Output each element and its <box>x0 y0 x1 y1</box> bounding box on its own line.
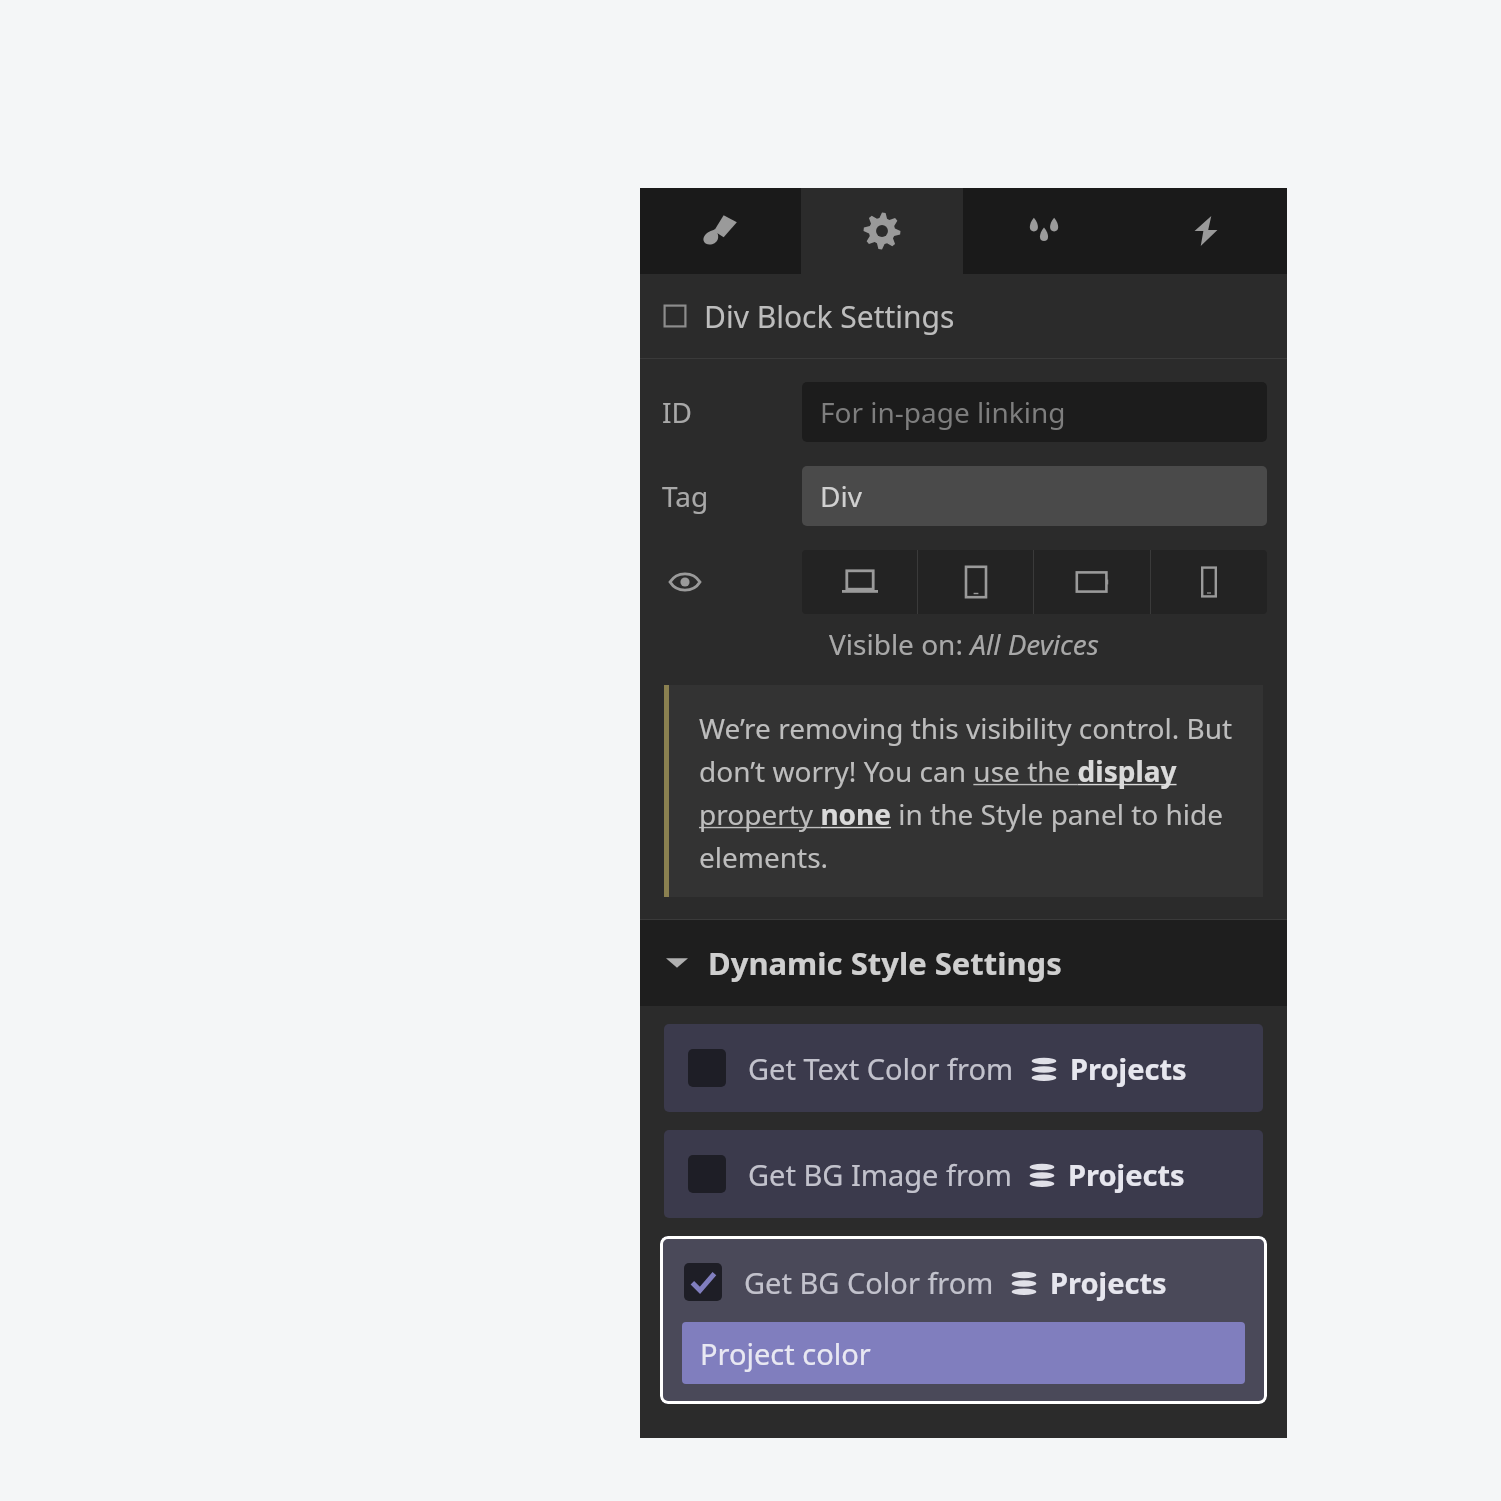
button[interactable]: Desktop <box>802 550 917 614</box>
staticText: Projects <box>1050 1263 1167 1302</box>
staticText: Project color <box>700 1334 871 1373</box>
staticText: For in-page linking <box>820 393 1066 431</box>
button[interactable]: Settings <box>801 188 963 274</box>
staticText: Projects <box>1070 1049 1187 1088</box>
staticText: Get BG Color from <box>744 1263 994 1302</box>
staticText: Visible on: All Devices <box>829 625 1099 663</box>
staticText: Dynamic Style Settings <box>708 942 1062 984</box>
button[interactable]: Project color <box>682 1322 1245 1384</box>
staticText: Tag <box>662 477 709 515</box>
button[interactable]: Get BG Color from <box>660 1236 1267 1404</box>
button[interactable]: Dynamic Style Settings <box>640 920 1287 1006</box>
staticText: We’re removing this visibility control. … <box>699 709 1243 876</box>
staticText: Projects <box>1068 1155 1185 1194</box>
button[interactable]: Div <box>802 466 1267 526</box>
staticText: Get BG Image from <box>748 1155 1012 1194</box>
button[interactable]: Get BG Image from <box>664 1130 1263 1218</box>
button[interactable]: Get Text Color from <box>664 1024 1263 1112</box>
button[interactable]: Style <box>640 188 801 274</box>
staticText: Div <box>820 477 862 515</box>
button[interactable]: Interactions <box>963 188 1125 274</box>
button[interactable]: Tablet <box>918 550 1033 614</box>
button[interactable]: Mobile portrait <box>1151 550 1267 614</box>
button[interactable]: Mobile landscape <box>1034 550 1150 614</box>
button[interactable]: Effects <box>1125 188 1287 274</box>
button[interactable]: For in-page linking <box>802 382 1267 442</box>
staticText: Get Text Color from <box>748 1049 1014 1088</box>
staticText: Div Block Settings <box>704 296 955 337</box>
button[interactable]: Div Block Settings <box>640 274 1287 358</box>
staticText: ID <box>662 393 692 431</box>
